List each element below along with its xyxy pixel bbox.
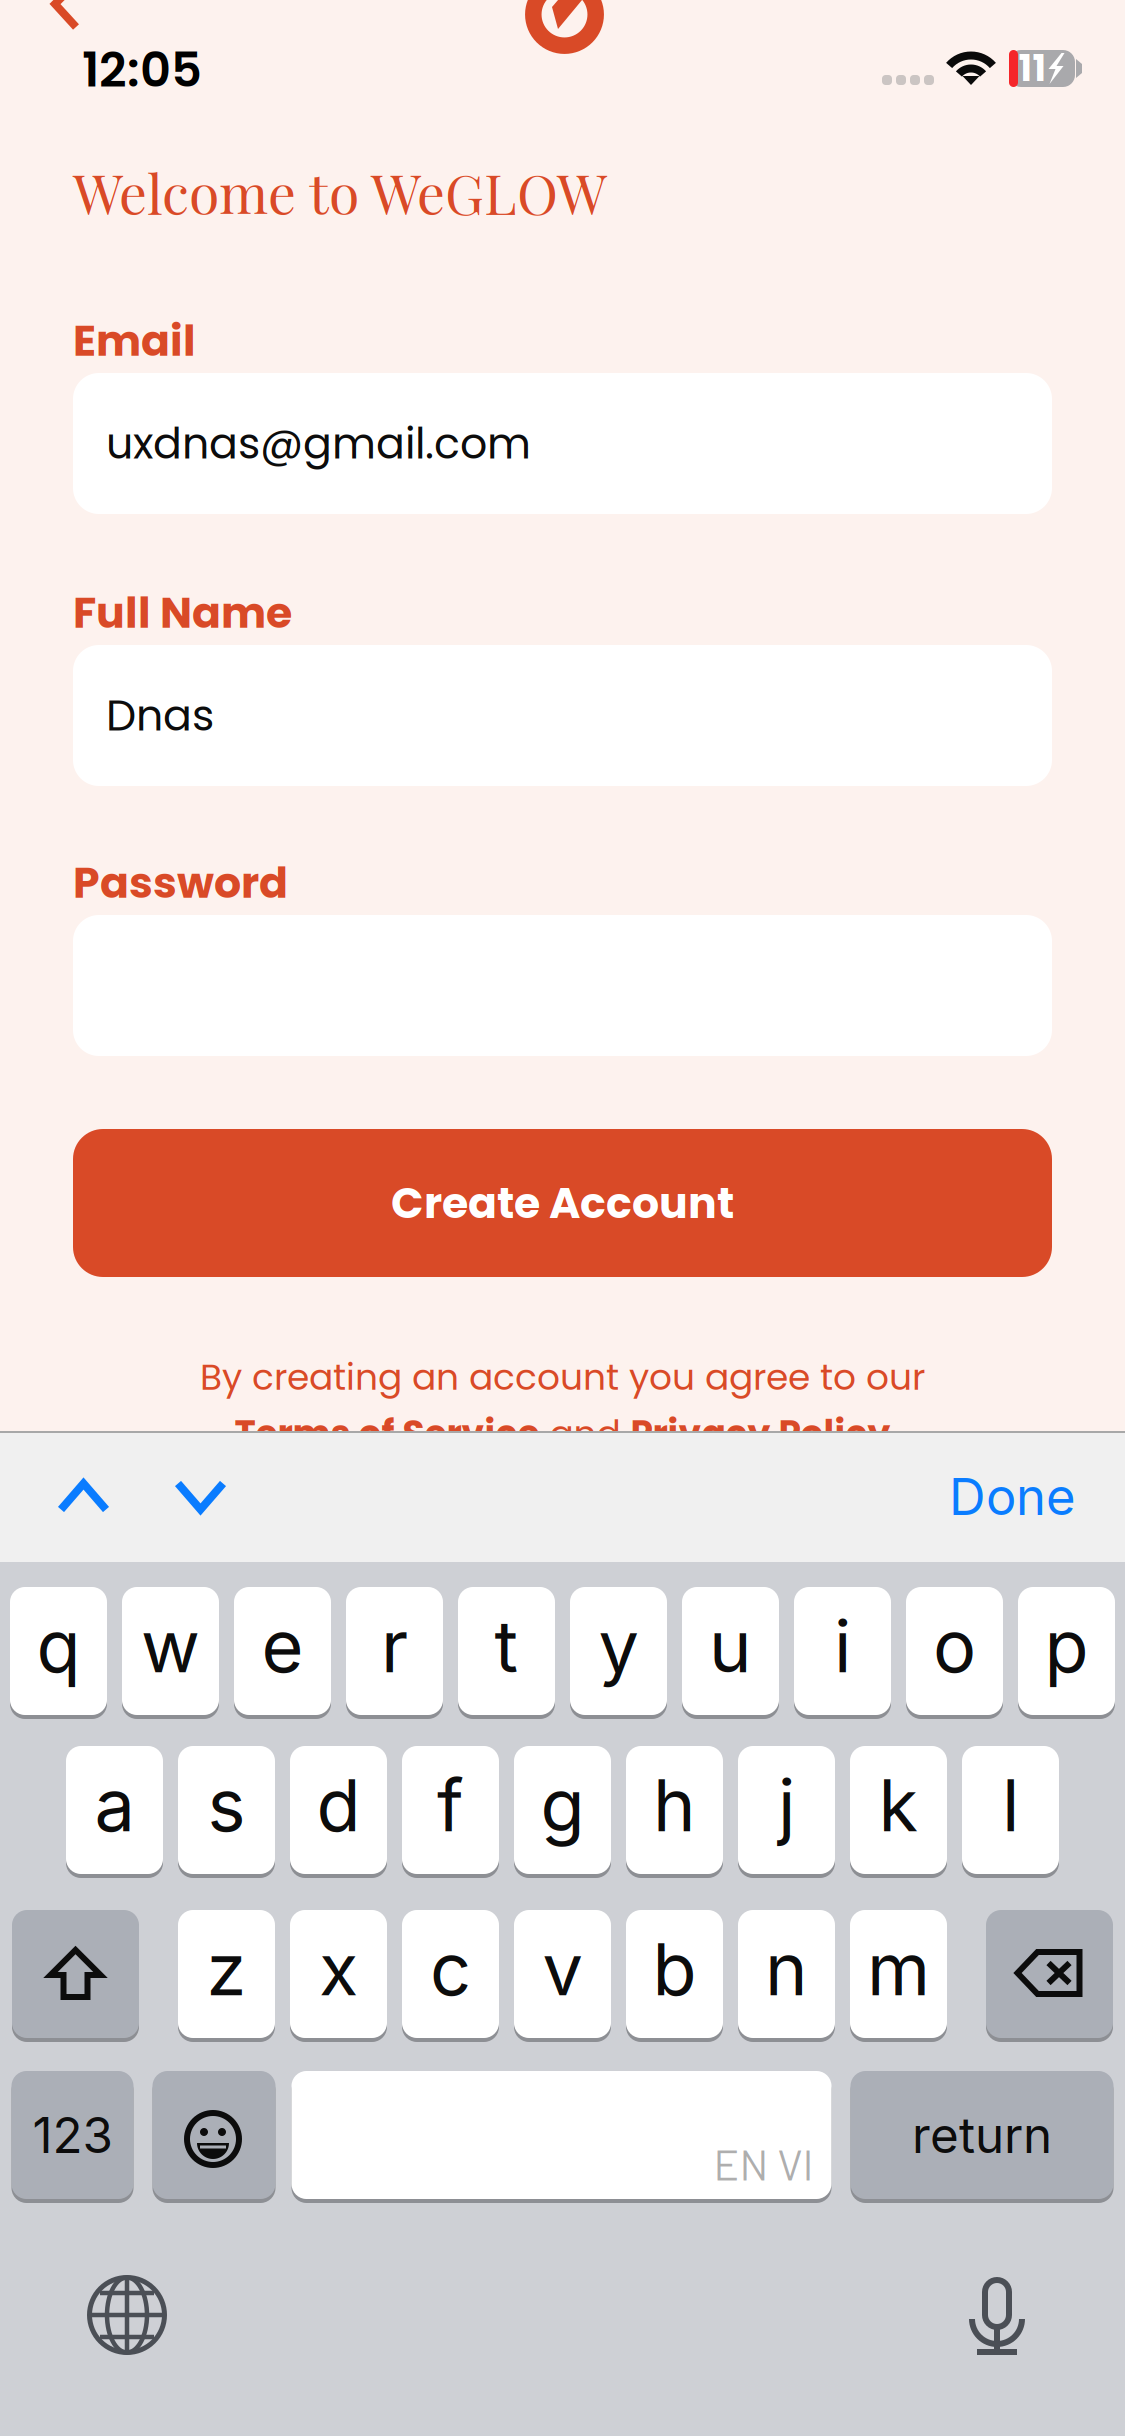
- button[interactable]: t: [458, 1584, 555, 1718]
- staticText: r: [381, 1602, 408, 1689]
- staticText: z: [206, 1925, 246, 2012]
- staticText: return: [912, 2105, 1052, 2165]
- staticText: 12:05: [82, 36, 202, 103]
- button[interactable]: y: [570, 1584, 667, 1718]
- staticText: Full Name: [73, 583, 292, 643]
- button[interactable]: Previous field: [31, 1433, 136, 1559]
- staticText: e: [261, 1602, 303, 1689]
- staticText: v: [542, 1925, 582, 2012]
- staticText: Terms of Service: [234, 1408, 539, 1459]
- button[interactable]: i: [794, 1584, 891, 1718]
- staticText: h: [653, 1761, 696, 1848]
- staticText: g: [540, 1761, 584, 1848]
- staticText: l: [1002, 1761, 1019, 1848]
- staticText: uxdnas@gmail.com: [106, 414, 531, 473]
- staticText: o: [933, 1602, 976, 1689]
- staticText: p: [1044, 1602, 1088, 1689]
- button[interactable]: x: [290, 1907, 387, 2041]
- button[interactable]: s: [178, 1743, 275, 1877]
- button[interactable]: m: [850, 1907, 947, 2041]
- staticText: b: [652, 1925, 696, 2012]
- button[interactable]: Terms of Service: [234, 1408, 539, 1459]
- button[interactable]: Next field: [148, 1433, 253, 1559]
- button[interactable]: Back: [44, 0, 88, 32]
- button[interactable]: c: [402, 1907, 499, 2041]
- staticText: and: [539, 1408, 630, 1459]
- button[interactable]: l: [962, 1743, 1059, 1877]
- staticText: 123: [32, 2105, 112, 2165]
- staticText: 11: [1018, 43, 1046, 94]
- staticText: c: [430, 1925, 471, 2012]
- button[interactable]: Emoji: [152, 2068, 275, 2202]
- staticText: Email: [73, 311, 196, 371]
- button[interactable]: Dictation: [969, 2273, 1025, 2357]
- staticText: Privacy Policy: [630, 1408, 890, 1459]
- button[interactable]: o: [906, 1584, 1003, 1718]
- staticText: By creating an account you agree to our: [200, 1352, 925, 1402]
- button[interactable]: b: [626, 1907, 723, 2041]
- staticText: y: [598, 1602, 638, 1689]
- button[interactable]: u: [682, 1584, 779, 1718]
- button[interactable]: Next keyboard: [87, 2275, 167, 2355]
- staticText: u: [709, 1602, 752, 1689]
- button[interactable]: d: [290, 1743, 387, 1877]
- button[interactable]: j: [738, 1743, 835, 1877]
- staticText: Create Account: [391, 1173, 734, 1233]
- staticText: x: [319, 1925, 358, 2012]
- button[interactable]: Delete: [986, 1907, 1113, 2041]
- button[interactable]: p: [1018, 1584, 1115, 1718]
- button[interactable]: Create Account: [73, 1129, 1052, 1277]
- button[interactable]: Shift: [12, 1907, 139, 2041]
- button[interactable]: e: [234, 1584, 331, 1718]
- staticText: d: [316, 1761, 360, 1848]
- staticText: j: [778, 1761, 795, 1848]
- button[interactable]: uxdnas@gmail.com: [73, 373, 1052, 514]
- button[interactable]: w: [122, 1584, 219, 1718]
- button[interactable]: a: [66, 1743, 163, 1877]
- button[interactable]: Done: [923, 1422, 1102, 1571]
- button[interactable]: 123: [11, 2068, 133, 2202]
- button[interactable]: g: [514, 1743, 611, 1877]
- staticText: EN VI: [713, 2138, 813, 2189]
- button[interactable]: r: [346, 1584, 443, 1718]
- staticText: m: [867, 1925, 930, 2012]
- button[interactable]: Space: [291, 2068, 831, 2202]
- button[interactable]: h: [626, 1743, 723, 1877]
- button[interactable]: return: [850, 2068, 1113, 2202]
- staticText: Dnas: [106, 686, 214, 745]
- button[interactable]: Dnas: [73, 645, 1052, 786]
- button[interactable]: Privacy Policy: [630, 1408, 890, 1459]
- button[interactable]: n: [738, 1907, 835, 2041]
- button[interactable]: z: [178, 1907, 275, 2041]
- staticText: f: [437, 1761, 464, 1848]
- staticText: q: [36, 1602, 80, 1689]
- button[interactable]: v: [514, 1907, 611, 2041]
- staticText: Password: [73, 853, 288, 913]
- button[interactable]: q: [10, 1584, 107, 1718]
- staticText: s: [207, 1761, 245, 1848]
- staticText: t: [494, 1602, 518, 1689]
- staticText: w: [141, 1602, 200, 1689]
- button[interactable]: k: [850, 1743, 947, 1877]
- staticText: k: [878, 1761, 918, 1848]
- button[interactable]: f: [402, 1743, 499, 1877]
- staticText: Welcome to WeGLOW: [73, 155, 607, 229]
- staticText: n: [765, 1925, 808, 2012]
- staticText: Done: [949, 1466, 1076, 1527]
- staticText: a: [94, 1761, 134, 1848]
- staticText: i: [834, 1602, 851, 1689]
